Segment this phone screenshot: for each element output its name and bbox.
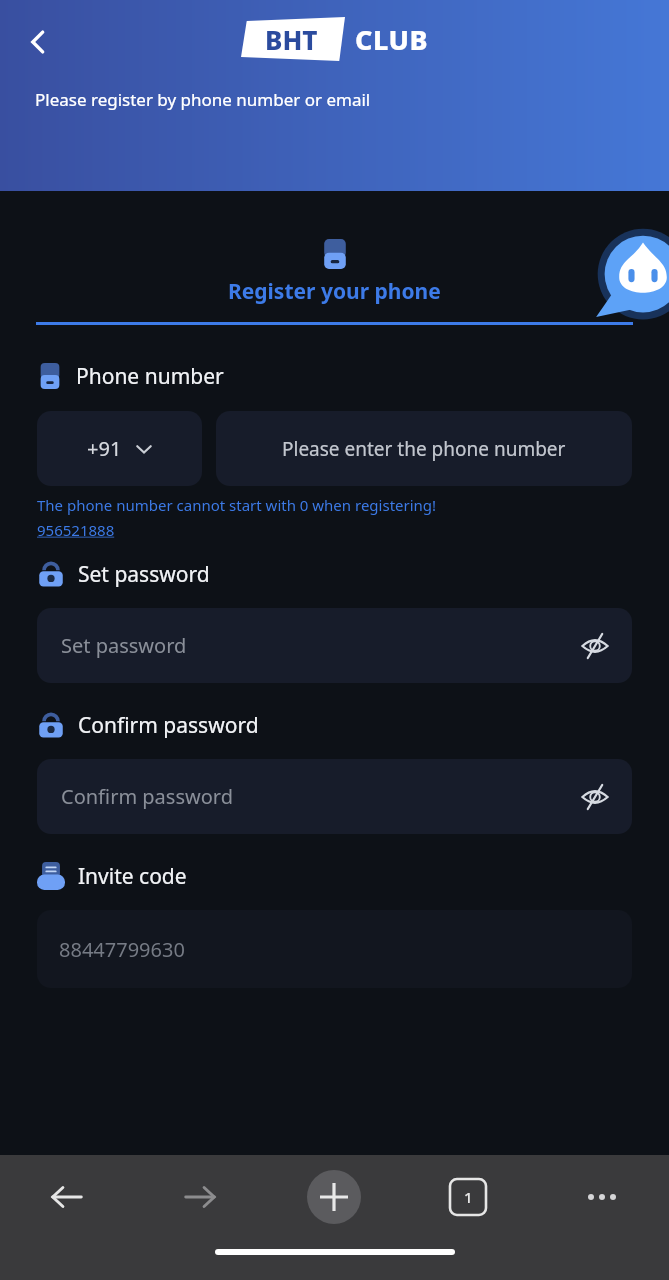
staticText: Please register by phone number or email	[35, 88, 371, 111]
button[interactable]: +91	[37, 411, 202, 486]
staticText: Set password	[78, 560, 210, 589]
staticText: 88447799630	[59, 936, 185, 963]
button[interactable]: Back	[0, 1155, 133, 1239]
button[interactable]: 88447799630	[37, 910, 632, 988]
button[interactable]: 956521888	[37, 520, 115, 540]
staticText: Confirm password	[61, 783, 233, 810]
button[interactable]: Back	[10, 14, 66, 70]
button[interactable]: New tab	[267, 1155, 401, 1239]
staticText: 1	[464, 1187, 473, 1207]
button[interactable]: Forward	[133, 1155, 267, 1239]
staticText: Please enter the phone number	[282, 436, 566, 462]
button[interactable]: Show password	[572, 623, 618, 669]
staticText: +91	[87, 435, 122, 462]
button[interactable]: Customer service chat	[595, 228, 669, 324]
staticText: The phone number cannot start with 0 whe…	[37, 495, 437, 515]
staticText: Invite code	[78, 862, 187, 891]
staticText: Register your phone	[228, 277, 441, 306]
staticText: BHT	[265, 22, 318, 57]
staticText: Phone number	[76, 362, 224, 391]
staticText: Confirm password	[78, 711, 259, 740]
button[interactable]: Show password	[572, 774, 618, 820]
button[interactable]: Register your phone	[0, 239, 669, 325]
button[interactable]: Tabs	[401, 1155, 535, 1239]
staticText: CLUB	[355, 21, 429, 58]
button[interactable]: Set password	[37, 608, 632, 683]
staticText: Set password	[61, 632, 187, 659]
button[interactable]: More options	[535, 1155, 669, 1239]
button[interactable]: Confirm password	[37, 759, 632, 834]
button[interactable]: Please enter the phone number	[216, 411, 632, 486]
